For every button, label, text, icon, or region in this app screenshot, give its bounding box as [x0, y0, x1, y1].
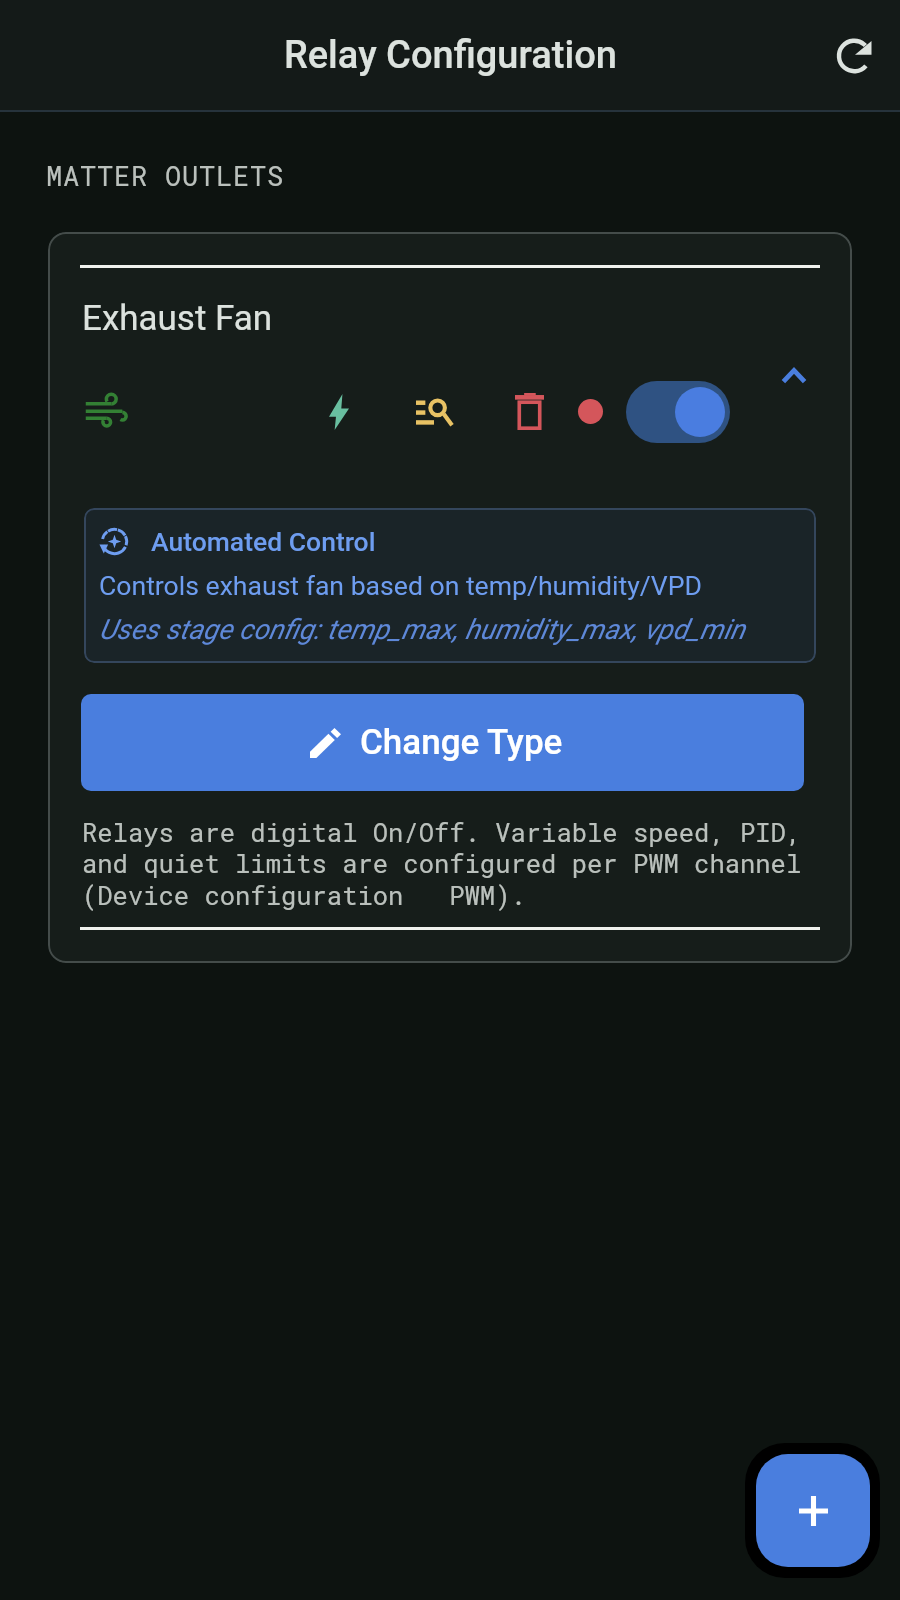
staticText: Relay Configuration [284, 33, 617, 78]
button[interactable]: Power [329, 394, 349, 430]
button[interactable]: Manage search [416, 399, 452, 426]
button[interactable]: Refresh [830, 31, 880, 81]
button[interactable]: Airflow [84, 391, 125, 427]
staticText: Exhaust Fan [82, 298, 273, 339]
button[interactable]: Collapse [781, 368, 807, 384]
staticText: Change Type [360, 722, 563, 763]
button[interactable]: Add relay [756, 1454, 870, 1567]
button[interactable]: Relay enabled [626, 381, 730, 443]
staticText: Relays are digital On/Off. Variable spee… [82, 815, 823, 912]
staticText: Automated Control [151, 526, 376, 557]
staticText: Controls exhaust fan based on temp/humid… [99, 570, 702, 601]
staticText: Uses stage config: temp_max, humidity_ma… [99, 613, 745, 646]
staticText: MATTER OUTLETS [46, 158, 285, 194]
button[interactable]: Delete [515, 393, 544, 430]
button[interactable]: Change Type [81, 694, 804, 791]
